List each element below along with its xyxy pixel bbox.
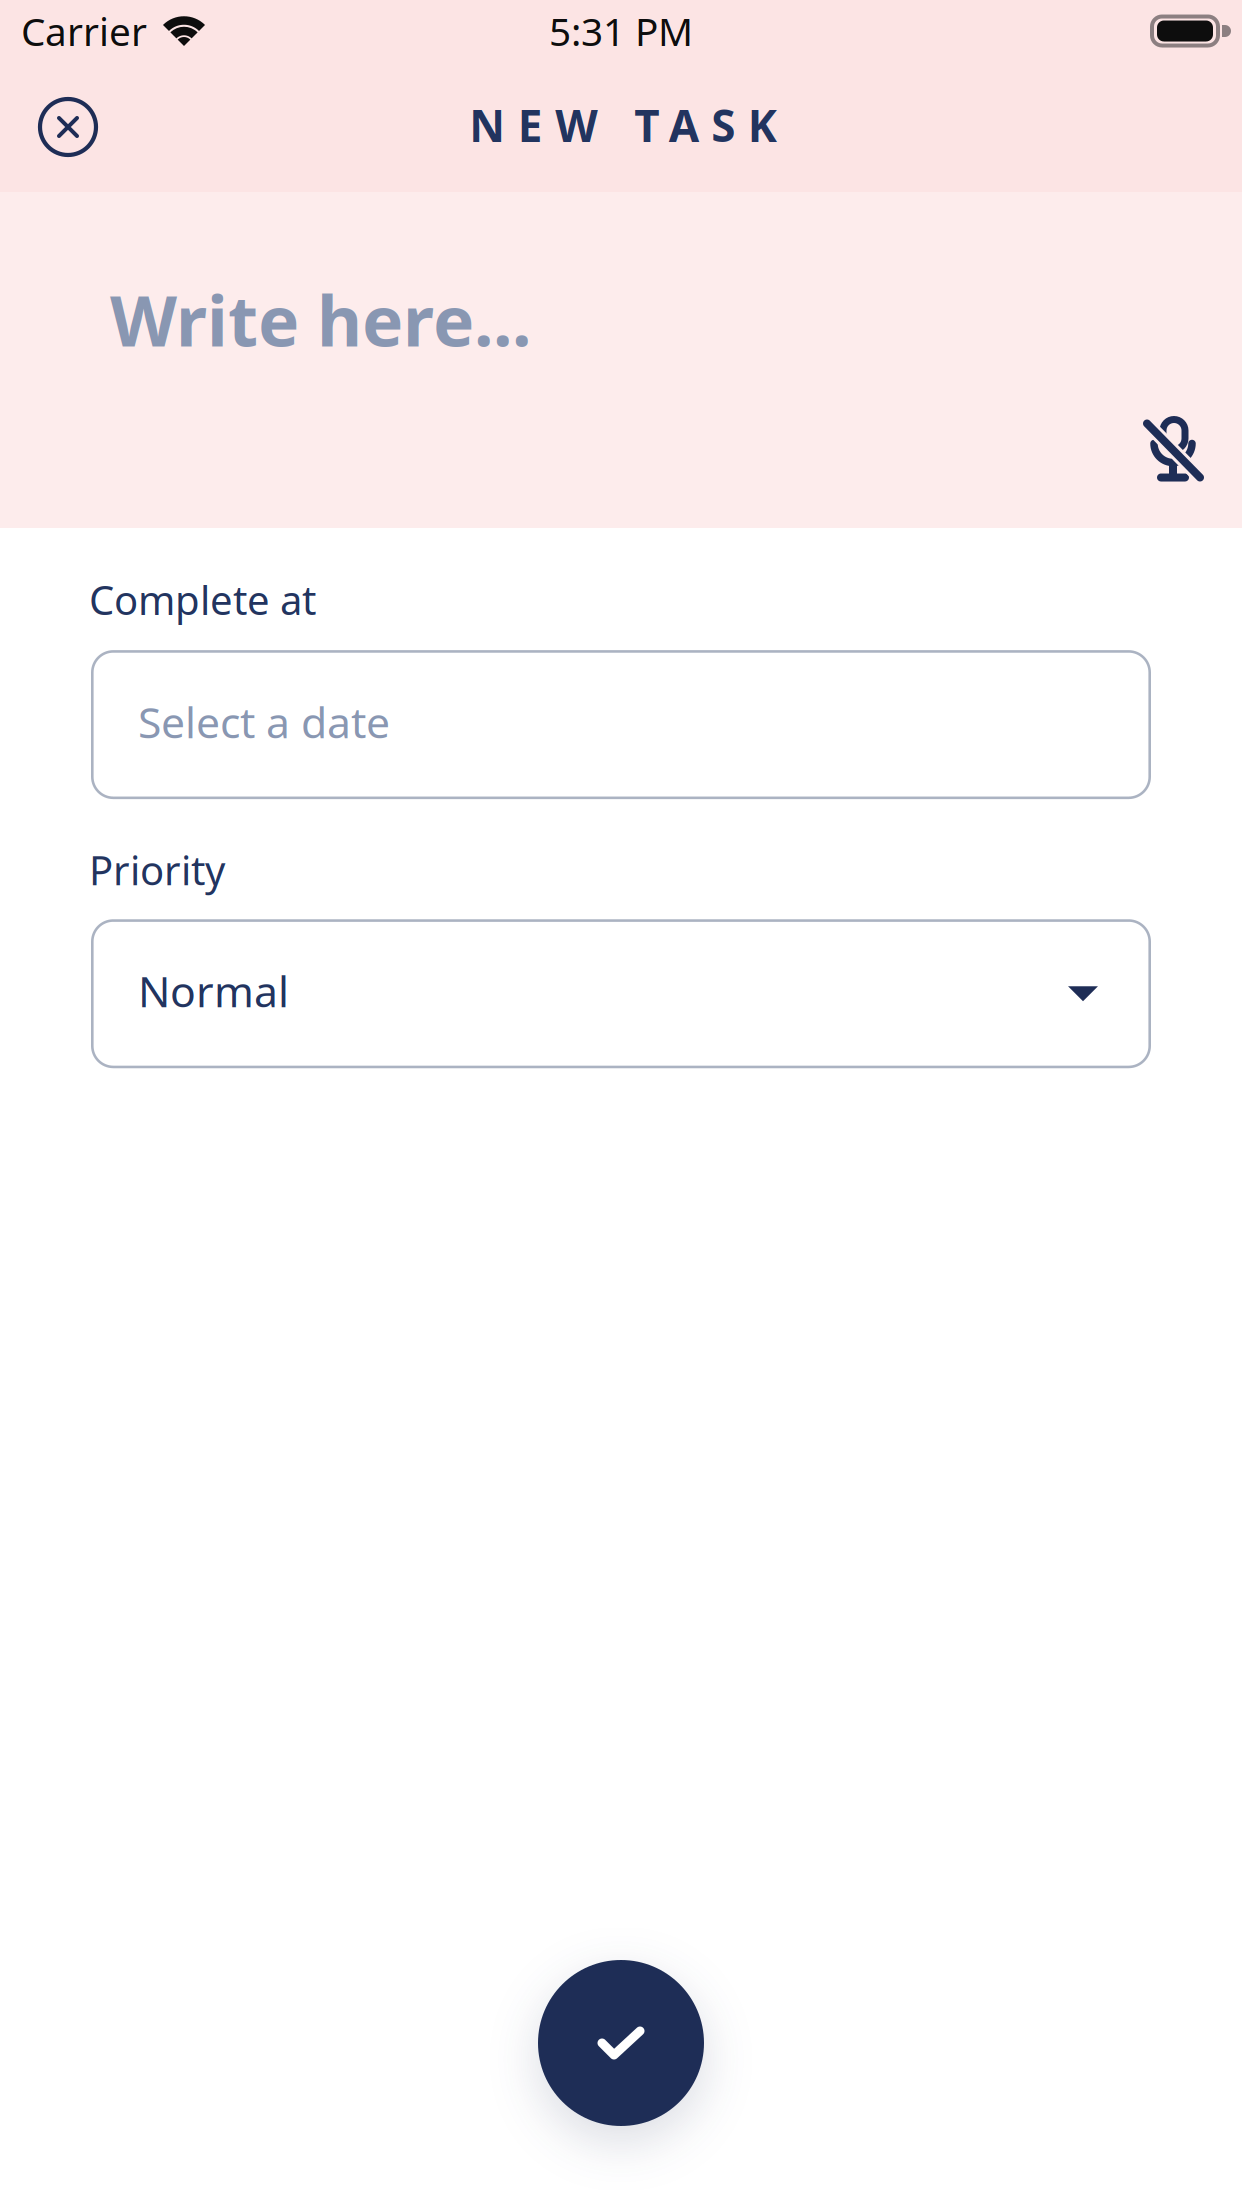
button[interactable]: Select a date — [91, 650, 1151, 799]
staticText: Write here... — [110, 273, 531, 366]
staticText: Complete at — [89, 573, 316, 626]
staticText: Normal — [138, 962, 289, 1019]
staticText: Priority — [89, 843, 225, 896]
button[interactable]: Close — [22, 81, 114, 173]
button[interactable]: Save task — [526, 1948, 716, 2138]
staticText: NEW TASK — [469, 96, 777, 154]
staticText: Carrier — [21, 5, 147, 57]
staticText: 5:31 PM — [549, 5, 693, 57]
staticText: Select a date — [138, 693, 390, 750]
button[interactable]: Dictate — [1121, 398, 1225, 502]
button[interactable]: Write here... — [0, 217, 1242, 387]
button[interactable]: Normal — [91, 919, 1151, 1068]
